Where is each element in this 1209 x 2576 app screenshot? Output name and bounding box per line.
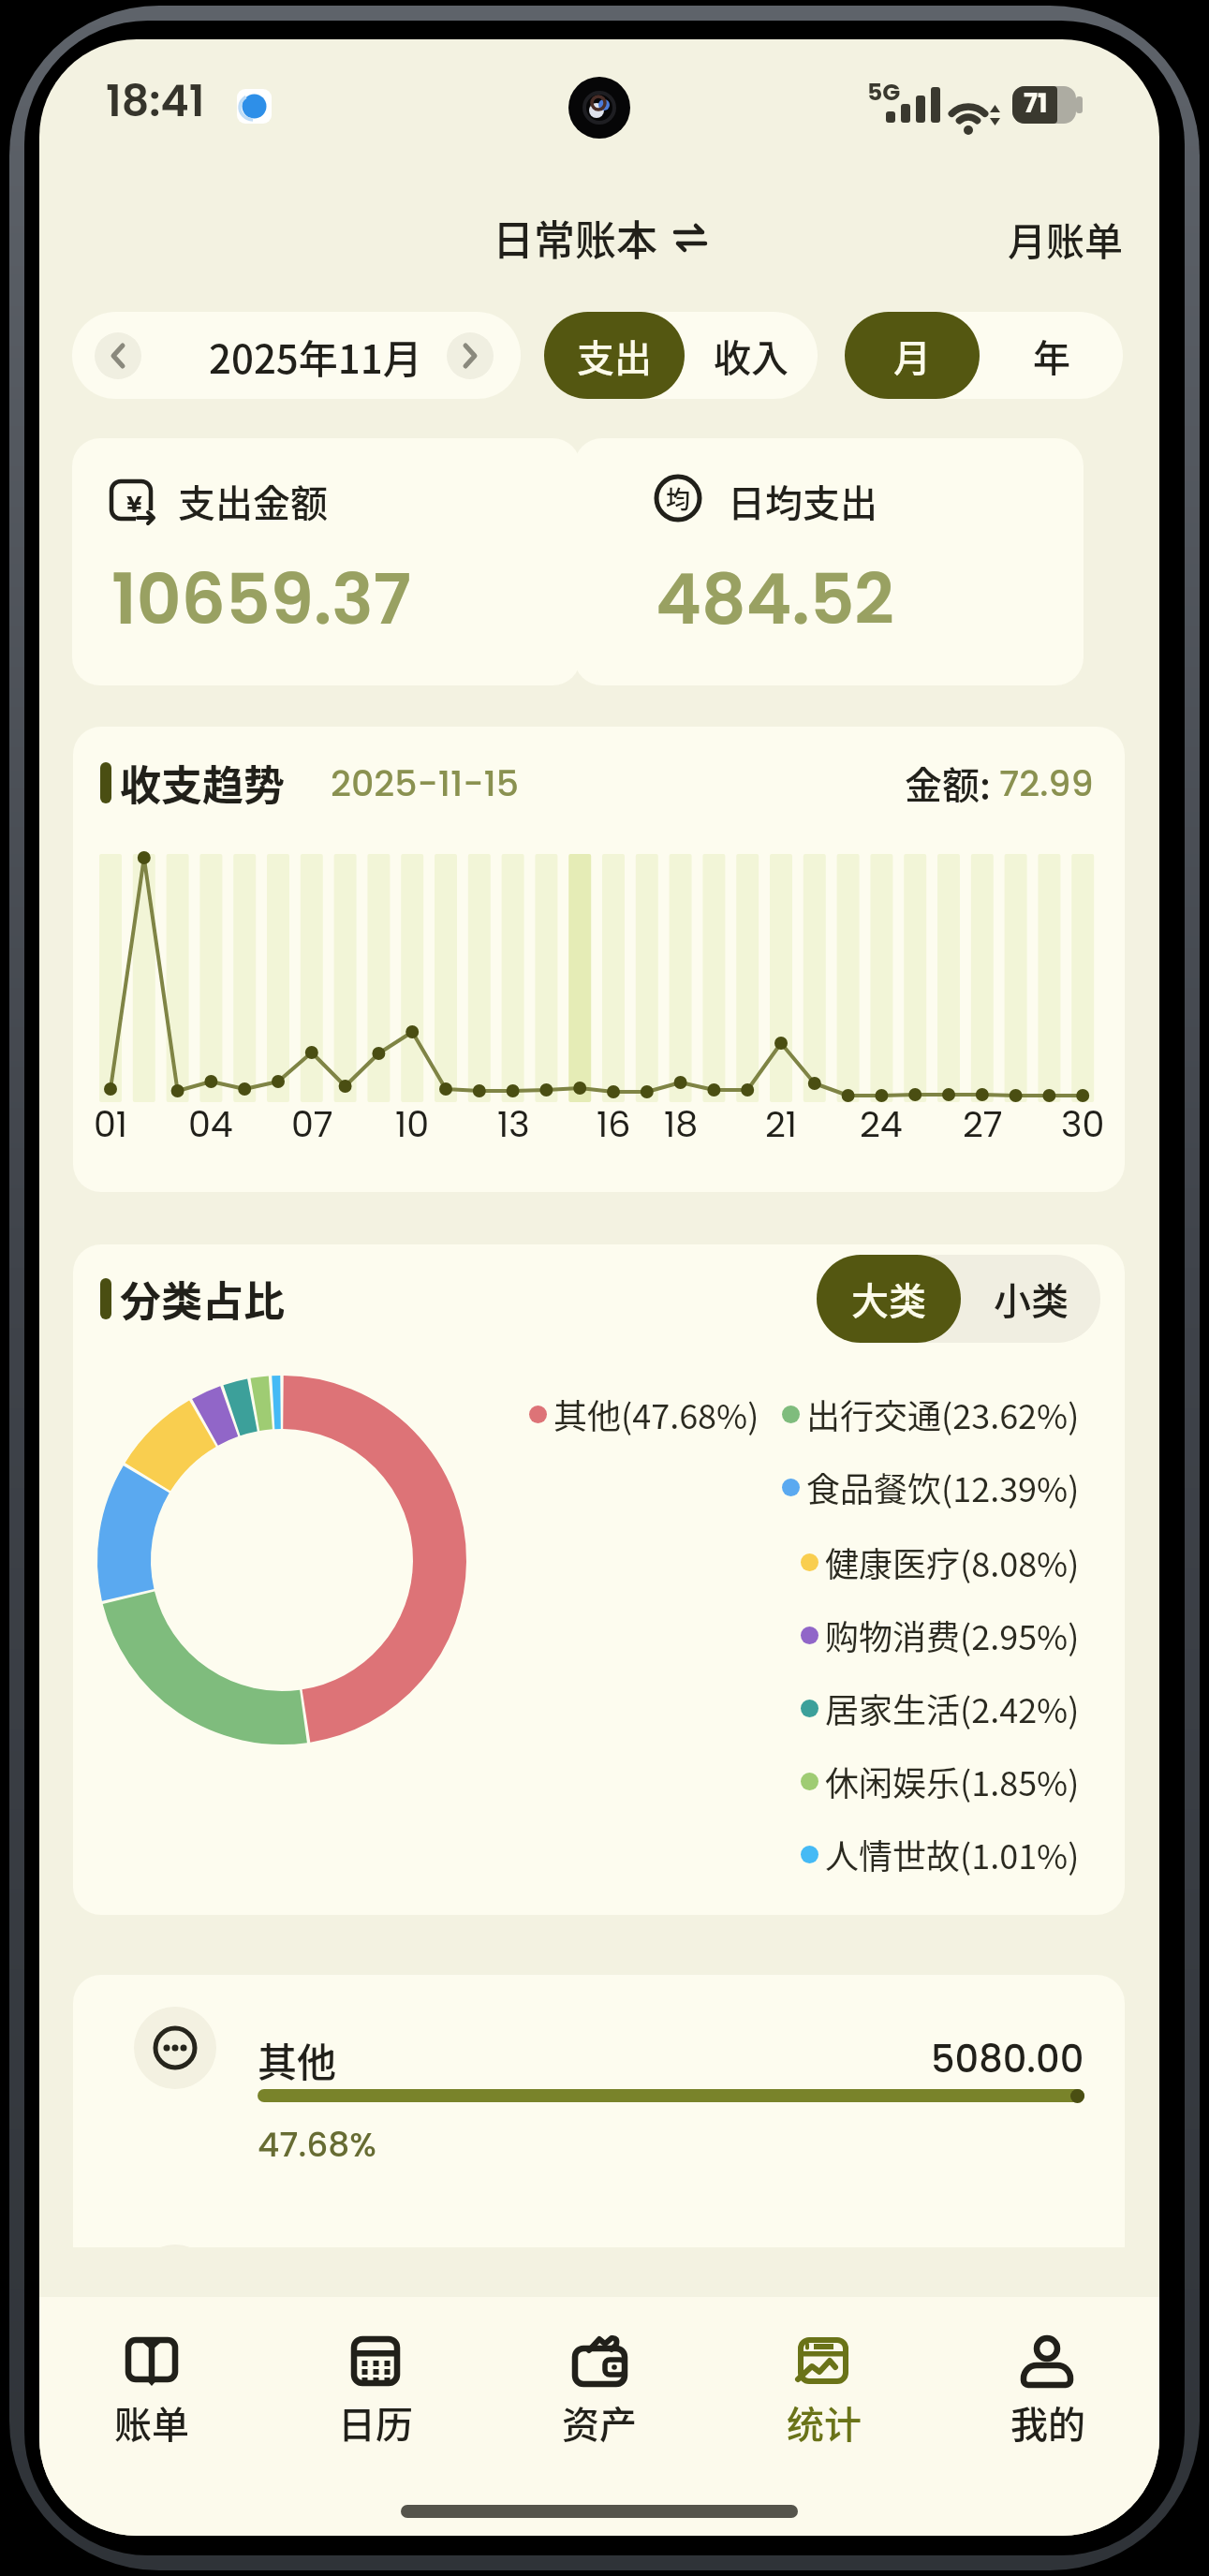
staticText: 月 (893, 329, 931, 383)
button[interactable] (263, 2305, 487, 2530)
staticText: 分类占比 (120, 1269, 285, 1329)
button[interactable]: 月 (845, 312, 980, 399)
staticText: 2025-11-15 (331, 758, 520, 808)
staticText: 24 (860, 1099, 903, 1149)
staticText: 30 (1061, 1099, 1105, 1149)
staticText: 资产 (562, 2395, 637, 2450)
staticText: 10 (395, 1099, 430, 1149)
staticText: 01 (94, 1099, 128, 1149)
staticText: 2025年11月 (209, 328, 422, 385)
staticText: 支出金额 (178, 474, 328, 528)
staticText: 72.99 (999, 758, 1094, 808)
staticText: 日历 (338, 2395, 413, 2450)
staticText: 食品餐饮(12.39%) (806, 1463, 1080, 1511)
button[interactable]: 日常账本 (412, 207, 787, 269)
staticText: 484.52 (656, 551, 894, 648)
staticText: 支出 (577, 329, 652, 383)
staticText: 5G (867, 76, 901, 109)
button[interactable] (39, 2305, 263, 2530)
staticText: 月账单 (1008, 211, 1123, 266)
button[interactable] (447, 332, 494, 379)
staticText: 年 (1033, 329, 1070, 383)
staticText: 27 (963, 1099, 1003, 1149)
staticText: 金额: (905, 756, 999, 810)
staticText: 13 (497, 1099, 530, 1149)
staticText: 休闲娱乐(1.85%) (825, 1757, 1080, 1805)
button[interactable]: 支出 (544, 312, 685, 399)
button[interactable]: 大类 (817, 1255, 961, 1343)
staticText: 47.68% (258, 2121, 376, 2168)
staticText: 均 (666, 480, 691, 516)
staticText: 07 (291, 1099, 333, 1149)
button[interactable] (95, 332, 141, 379)
button[interactable]: 小类 (961, 1255, 1100, 1343)
staticText: 04 (188, 1099, 233, 1149)
button[interactable] (936, 2305, 1159, 2530)
staticText: 其他 (258, 2031, 337, 2088)
staticText: 出行交通(23.62%) (806, 1390, 1080, 1438)
button[interactable]: 年 (980, 312, 1123, 399)
button[interactable] (487, 2305, 711, 2530)
staticText: 我的 (1010, 2395, 1085, 2450)
staticText: 21 (765, 1099, 798, 1149)
staticText: 10659.37 (111, 551, 412, 648)
staticText: 18:41 (106, 71, 205, 131)
staticText: 5080.00 (931, 2033, 1084, 2085)
staticText: 收入 (714, 329, 789, 383)
staticText: 日均支出 (728, 474, 877, 528)
staticText: 居家生活(2.42%) (825, 1684, 1080, 1732)
button[interactable]: 月账单 (982, 207, 1123, 269)
button[interactable] (712, 2305, 936, 2530)
button[interactable]: 收入 (685, 312, 818, 399)
staticText: 人情世故(1.01%) (825, 1830, 1080, 1878)
staticText: 18 (664, 1099, 699, 1149)
staticText: 健康医疗(8.08%) (825, 1538, 1080, 1586)
staticText: 购物消费(2.95%) (825, 1611, 1080, 1659)
staticText: 71 (1024, 85, 1048, 122)
staticText: 统计 (787, 2395, 862, 2450)
staticText: 16 (597, 1099, 631, 1149)
staticText: ¥ (126, 488, 142, 521)
staticText: 日常账本 (493, 208, 657, 268)
staticText: 账单 (114, 2395, 189, 2450)
staticText: 大类 (851, 1272, 926, 1326)
staticText: 收支趋势 (120, 753, 285, 813)
staticText: 小类 (994, 1272, 1069, 1326)
staticText: 其他(47.68%) (553, 1390, 759, 1438)
